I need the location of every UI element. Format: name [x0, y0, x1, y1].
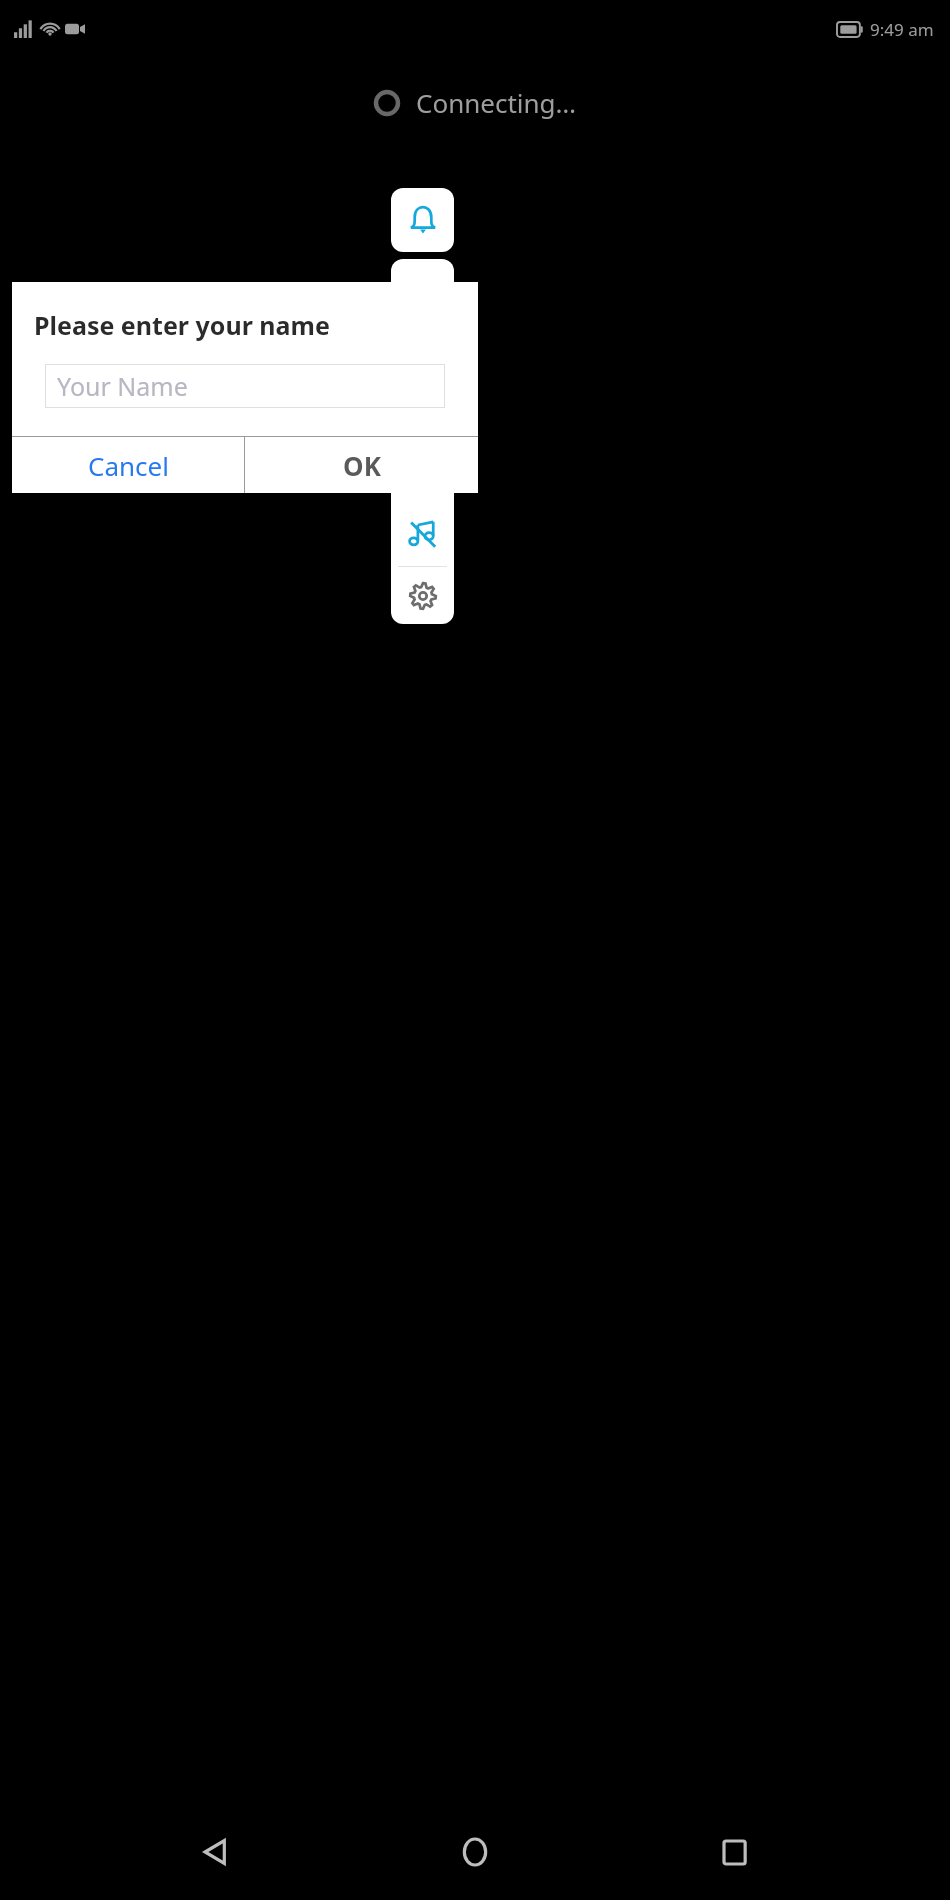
staticText: 9:49 am [870, 18, 934, 41]
staticText: Cancel [88, 448, 169, 483]
button[interactable]: Settings [391, 567, 454, 624]
button[interactable]: Volume slider [391, 259, 454, 502]
button[interactable]: Home [431, 1808, 519, 1896]
staticText: Connecting… [416, 85, 577, 120]
staticText: Please enter your name [34, 308, 330, 342]
button[interactable]: OK [245, 437, 478, 493]
button[interactable]: Recent apps [691, 1808, 779, 1896]
staticText: OK [343, 448, 381, 483]
button[interactable]: Ringer mode [391, 188, 454, 252]
button[interactable]: Your Name [45, 364, 445, 408]
button[interactable]: Back [172, 1808, 260, 1896]
staticText: Your Name [57, 369, 188, 403]
button[interactable]: Cancel [12, 437, 244, 493]
button[interactable]: Mute music [391, 502, 454, 566]
